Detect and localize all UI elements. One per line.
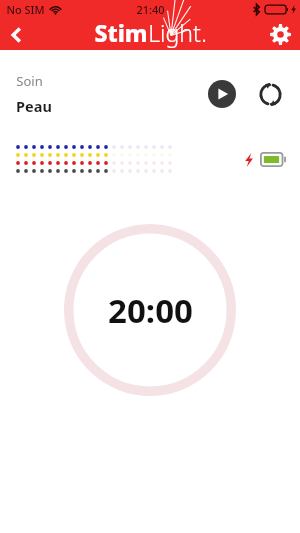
button[interactable]: Play bbox=[206, 78, 238, 110]
button[interactable]: Back bbox=[2, 20, 32, 50]
staticText: No SIM bbox=[6, 2, 45, 17]
button[interactable]: Settings bbox=[264, 18, 296, 50]
staticText: 21:40 bbox=[136, 2, 165, 17]
staticText: Stim bbox=[94, 17, 148, 48]
staticText: Peau bbox=[16, 96, 52, 116]
button[interactable]: Loop mode bbox=[254, 78, 286, 110]
staticText: . bbox=[201, 17, 207, 48]
staticText: Soin bbox=[16, 72, 43, 90]
staticText: Light bbox=[148, 17, 201, 48]
staticText: 20:00 bbox=[108, 288, 193, 333]
